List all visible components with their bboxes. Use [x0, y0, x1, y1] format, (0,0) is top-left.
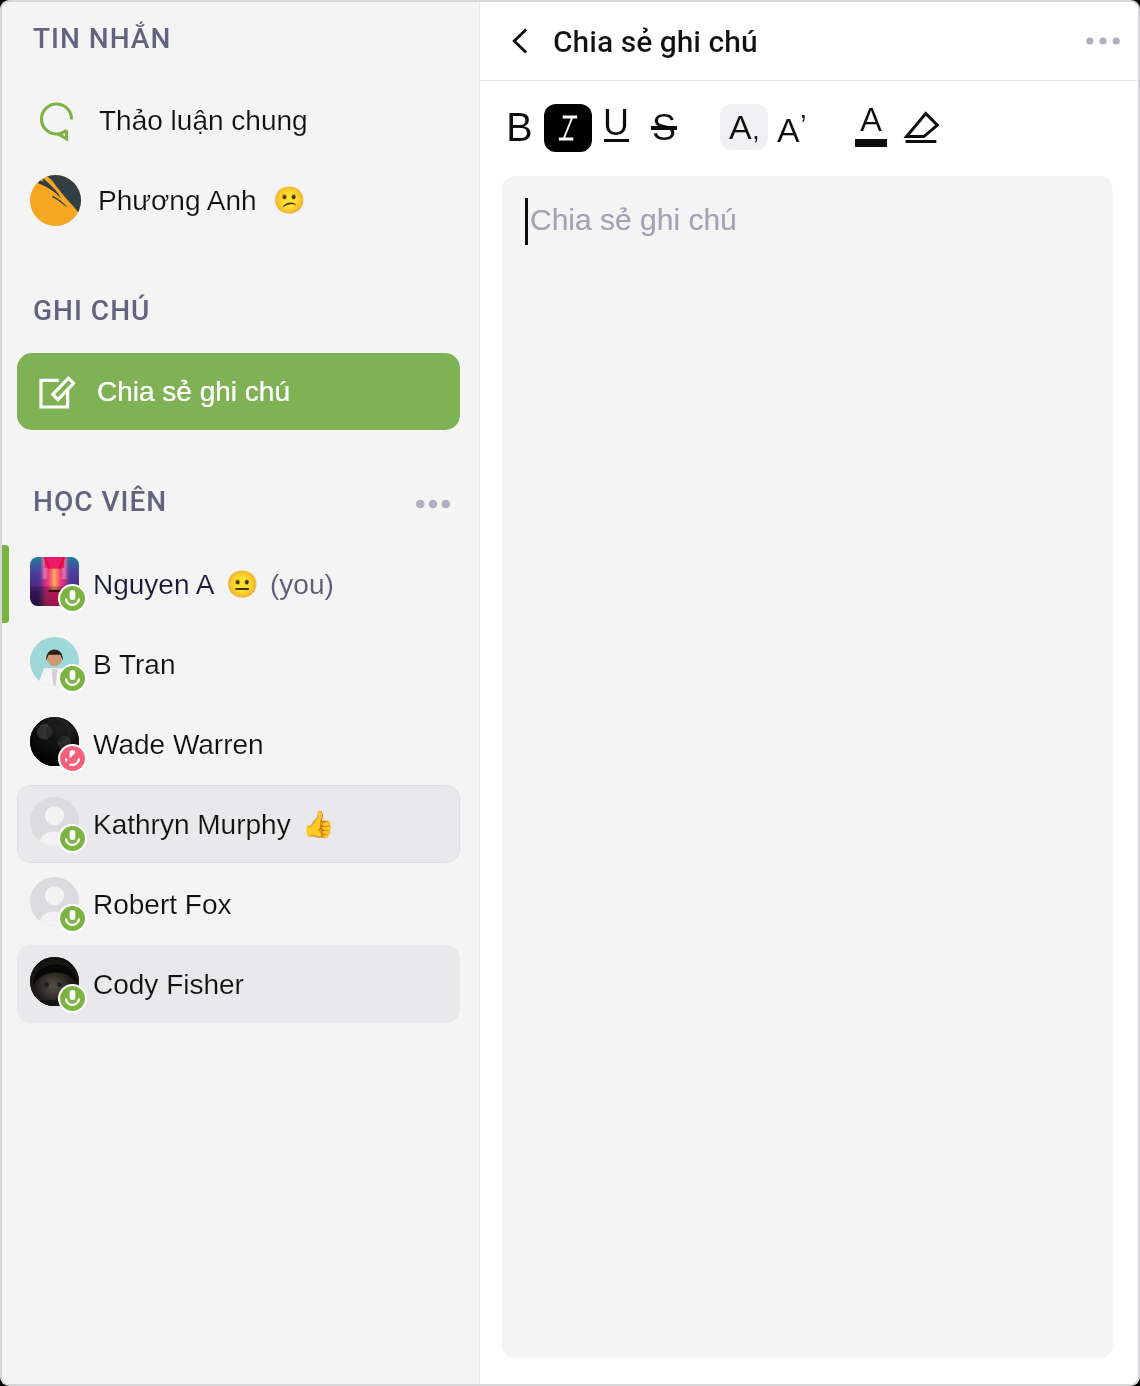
- staticText: 😐: [226, 569, 259, 600]
- staticText: A: [729, 108, 752, 146]
- button[interactable]: Clear formatting: [896, 103, 944, 151]
- staticText: A: [777, 111, 800, 149]
- button[interactable]: Back: [492, 13, 548, 69]
- staticText: TIN NHẮN: [33, 22, 172, 55]
- staticText: ,: [752, 114, 760, 145]
- staticText: Thảo luận chung: [99, 105, 308, 136]
- button[interactable]: Text colour: [847, 103, 895, 151]
- button[interactable]: Increase text size: [768, 103, 816, 151]
- staticText: Wade Warren: [93, 729, 264, 760]
- staticText: Robert Fox: [93, 889, 232, 920]
- button[interactable]: More options: [1075, 13, 1131, 69]
- button[interactable]: Chia sẻ ghi chú: [17, 353, 460, 430]
- button[interactable]: Italic: [544, 104, 592, 152]
- button[interactable]: Kathryn Murphy: [17, 785, 460, 863]
- button[interactable]: Strikethrough: [640, 103, 688, 151]
- staticText: S: [652, 107, 677, 147]
- button[interactable]: B Tran: [17, 625, 460, 703]
- staticText: 👍: [302, 809, 335, 840]
- staticText: Chia sẻ ghi chú: [553, 24, 758, 59]
- staticText: HỌC VIÊN: [33, 485, 168, 518]
- button[interactable]: Student list options: [407, 478, 459, 530]
- staticText: A: [860, 101, 883, 138]
- staticText: Cody Fisher: [93, 969, 244, 1000]
- staticText: U: [603, 102, 629, 142]
- button[interactable]: Nguyen A: [17, 545, 460, 623]
- staticText: Kathryn Murphy: [93, 809, 291, 840]
- staticText: GHI CHÚ: [33, 294, 151, 327]
- staticText: B Tran: [93, 649, 176, 680]
- staticText: (you): [270, 569, 334, 600]
- staticText: Phương Anh: [98, 185, 257, 216]
- button[interactable]: Underline: [592, 103, 640, 151]
- staticText: Chia sẻ ghi chú: [530, 203, 737, 237]
- button[interactable]: Cody Fisher: [17, 945, 460, 1023]
- staticText: Nguyen A: [93, 569, 215, 600]
- button[interactable]: Wade Warren: [17, 705, 460, 783]
- button[interactable]: Phương Anh: [2, 168, 479, 232]
- button[interactable]: Chia sẻ ghi chú: [502, 176, 1113, 1358]
- staticText: Chia sẻ ghi chú: [97, 376, 291, 407]
- staticText: 😕: [273, 185, 306, 216]
- button[interactable]: Decrease text size: [720, 104, 768, 150]
- staticText: B: [506, 105, 533, 150]
- button[interactable]: Thảo luận chung: [2, 88, 479, 152]
- button[interactable]: Bold: [495, 103, 543, 151]
- button[interactable]: Robert Fox: [17, 865, 460, 943]
- staticText: ’: [800, 108, 807, 142]
